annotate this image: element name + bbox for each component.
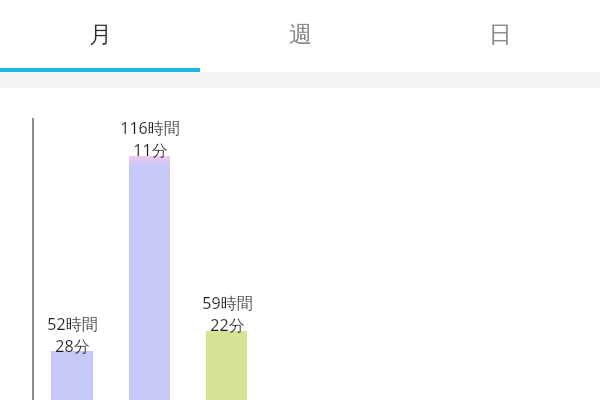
staticText: 59時間: [202, 292, 253, 314]
staticText: 28分: [55, 335, 90, 357]
staticText: 116時間: [120, 117, 180, 139]
button[interactable]: 月: [0, 0, 200, 68]
staticText: 日: [489, 20, 512, 49]
staticText: 月: [89, 20, 112, 49]
staticText: 11分: [133, 139, 168, 161]
staticText: 22分: [210, 314, 245, 336]
button[interactable]: 日: [400, 0, 600, 68]
staticText: 52時間: [47, 313, 98, 335]
staticText: 週: [289, 20, 312, 49]
button[interactable]: 週: [200, 0, 400, 68]
